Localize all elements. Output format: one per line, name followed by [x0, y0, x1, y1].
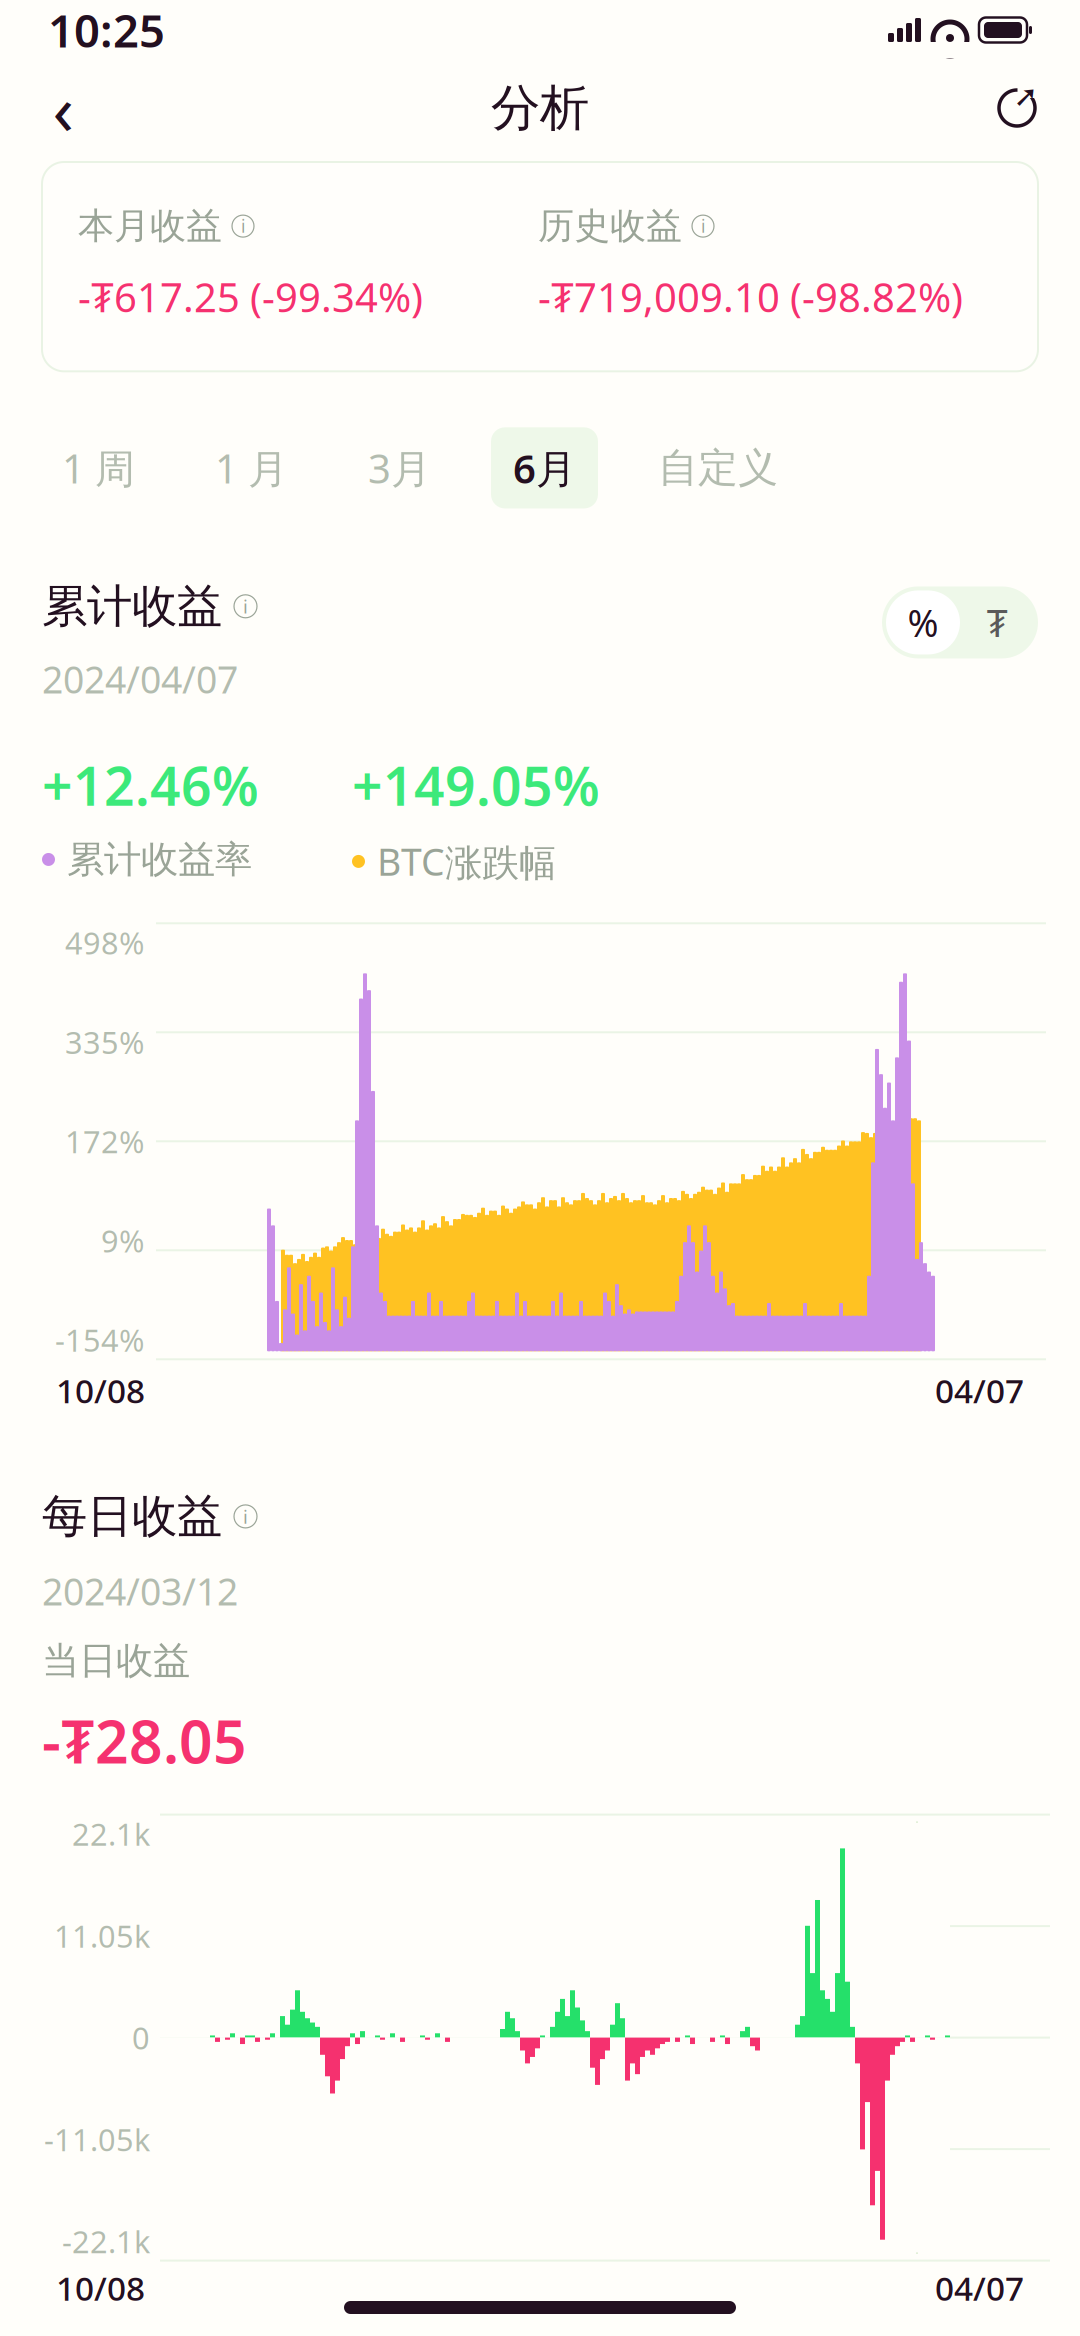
staticText: 335% — [65, 1022, 144, 1062]
staticText: 1 周 — [62, 441, 135, 494]
staticText: 10/08 — [56, 1368, 145, 1413]
staticText: 自定义 — [658, 443, 778, 492]
staticText: ₮ — [986, 598, 1007, 647]
staticText: i — [701, 215, 705, 238]
staticText: -11.05k — [44, 2119, 150, 2160]
staticText: 累计收益率 — [67, 836, 252, 882]
staticText: 本月收益 — [78, 204, 222, 248]
staticText: 1 月 — [215, 441, 288, 494]
staticText: 6月 — [513, 441, 576, 494]
staticText: 11.05k — [54, 1915, 150, 1956]
staticText: 0 — [132, 2017, 150, 2058]
button[interactable]: Back — [28, 73, 98, 143]
staticText: 04/07 — [935, 1368, 1024, 1413]
staticText: 172% — [65, 1121, 144, 1162]
button[interactable]: % — [886, 590, 960, 654]
staticText: -₮617.25 (-99.34%) — [78, 270, 423, 323]
staticText: 每日收益 — [42, 1489, 222, 1544]
staticText: 2024/03/12 — [42, 1566, 238, 1616]
staticText: -₮28.05 — [42, 1702, 247, 1780]
staticText: +149.05% — [352, 750, 600, 820]
staticText: 04/07 — [935, 2266, 1024, 2310]
staticText: ➚ — [1013, 79, 1038, 113]
staticText: i — [243, 1504, 248, 1529]
staticText: i — [241, 215, 245, 238]
button[interactable]: Refresh — [982, 73, 1052, 143]
staticText: 当日收益 — [42, 1638, 190, 1684]
staticText: 历史收益 — [538, 204, 682, 248]
staticText: 累计收益 — [42, 578, 222, 634]
staticText: 2024/04/07 — [42, 654, 238, 704]
staticText: 10:25 — [48, 0, 165, 60]
staticText: -22.1k — [62, 2221, 150, 2262]
button[interactable]: 6月 — [491, 427, 598, 508]
staticText: 10/08 — [56, 2266, 145, 2310]
button[interactable]: ₮ — [960, 590, 1034, 654]
staticText: +12.46% — [42, 750, 259, 820]
staticText: -₮719,009.10 (-98.82%) — [538, 270, 963, 323]
staticText: 498% — [65, 922, 144, 963]
staticText: i — [243, 594, 248, 619]
staticText: BTC涨跌幅 — [377, 836, 556, 886]
staticText: 分析 — [491, 78, 589, 138]
button[interactable]: 自定义 — [638, 429, 798, 506]
staticText: ‹ — [52, 62, 73, 154]
button[interactable]: 1 月 — [195, 427, 308, 508]
staticText: 9% — [101, 1220, 144, 1261]
staticText: 22.1k — [72, 1814, 150, 1854]
staticText: % — [907, 598, 938, 647]
staticText: 3月 — [368, 441, 431, 494]
button[interactable]: 3月 — [348, 427, 451, 508]
staticText: -154% — [55, 1320, 144, 1360]
button[interactable]: 1 周 — [42, 427, 155, 508]
